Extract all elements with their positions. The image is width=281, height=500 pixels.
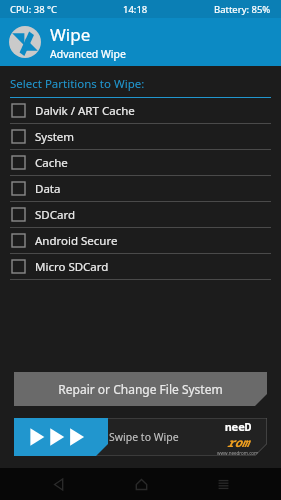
staticText: www.needrom.com (217, 450, 259, 456)
staticText: CPU: 38 °C (10, 3, 58, 16)
staticText: neeD (225, 419, 252, 434)
button[interactable]: Dalvik / ART Cache (0, 98, 281, 124)
staticText: Repair or Change File System (58, 381, 223, 397)
staticText: SDCard (35, 207, 76, 223)
staticText: Battery: 85% (214, 3, 271, 16)
button[interactable]: SDCard (0, 202, 281, 228)
other: TWRP logo (8, 25, 42, 59)
staticText: Wipe (50, 23, 91, 46)
button[interactable]: Micro SDCard (0, 254, 281, 280)
staticText: Android Secure (35, 233, 118, 249)
button[interactable]: Repair or Change File System (14, 372, 267, 406)
button[interactable]: Swipe to Wipe (14, 418, 267, 456)
button[interactable]: Cache (0, 150, 281, 176)
staticText: Swipe to Wipe (109, 430, 179, 444)
staticText: rom (227, 434, 249, 450)
button[interactable]: TWRP logo (0, 18, 281, 66)
button[interactable]: Back (34, 468, 82, 500)
staticText: Cache (35, 155, 68, 171)
staticText: Micro SDCard (35, 259, 109, 275)
staticText: Select Partitions to Wipe: (10, 76, 145, 92)
staticText: 14:18 (123, 3, 148, 16)
button[interactable]: Data (0, 176, 281, 202)
staticText: Advanced Wipe (50, 47, 126, 61)
button[interactable]: Android Secure (0, 228, 281, 254)
staticText: System (35, 129, 75, 145)
staticText: Dalvik / ART Cache (35, 103, 135, 119)
button[interactable]: Menu (199, 468, 247, 500)
button[interactable]: Home (117, 468, 165, 500)
staticText: Data (35, 181, 61, 197)
button[interactable]: System (0, 124, 281, 150)
